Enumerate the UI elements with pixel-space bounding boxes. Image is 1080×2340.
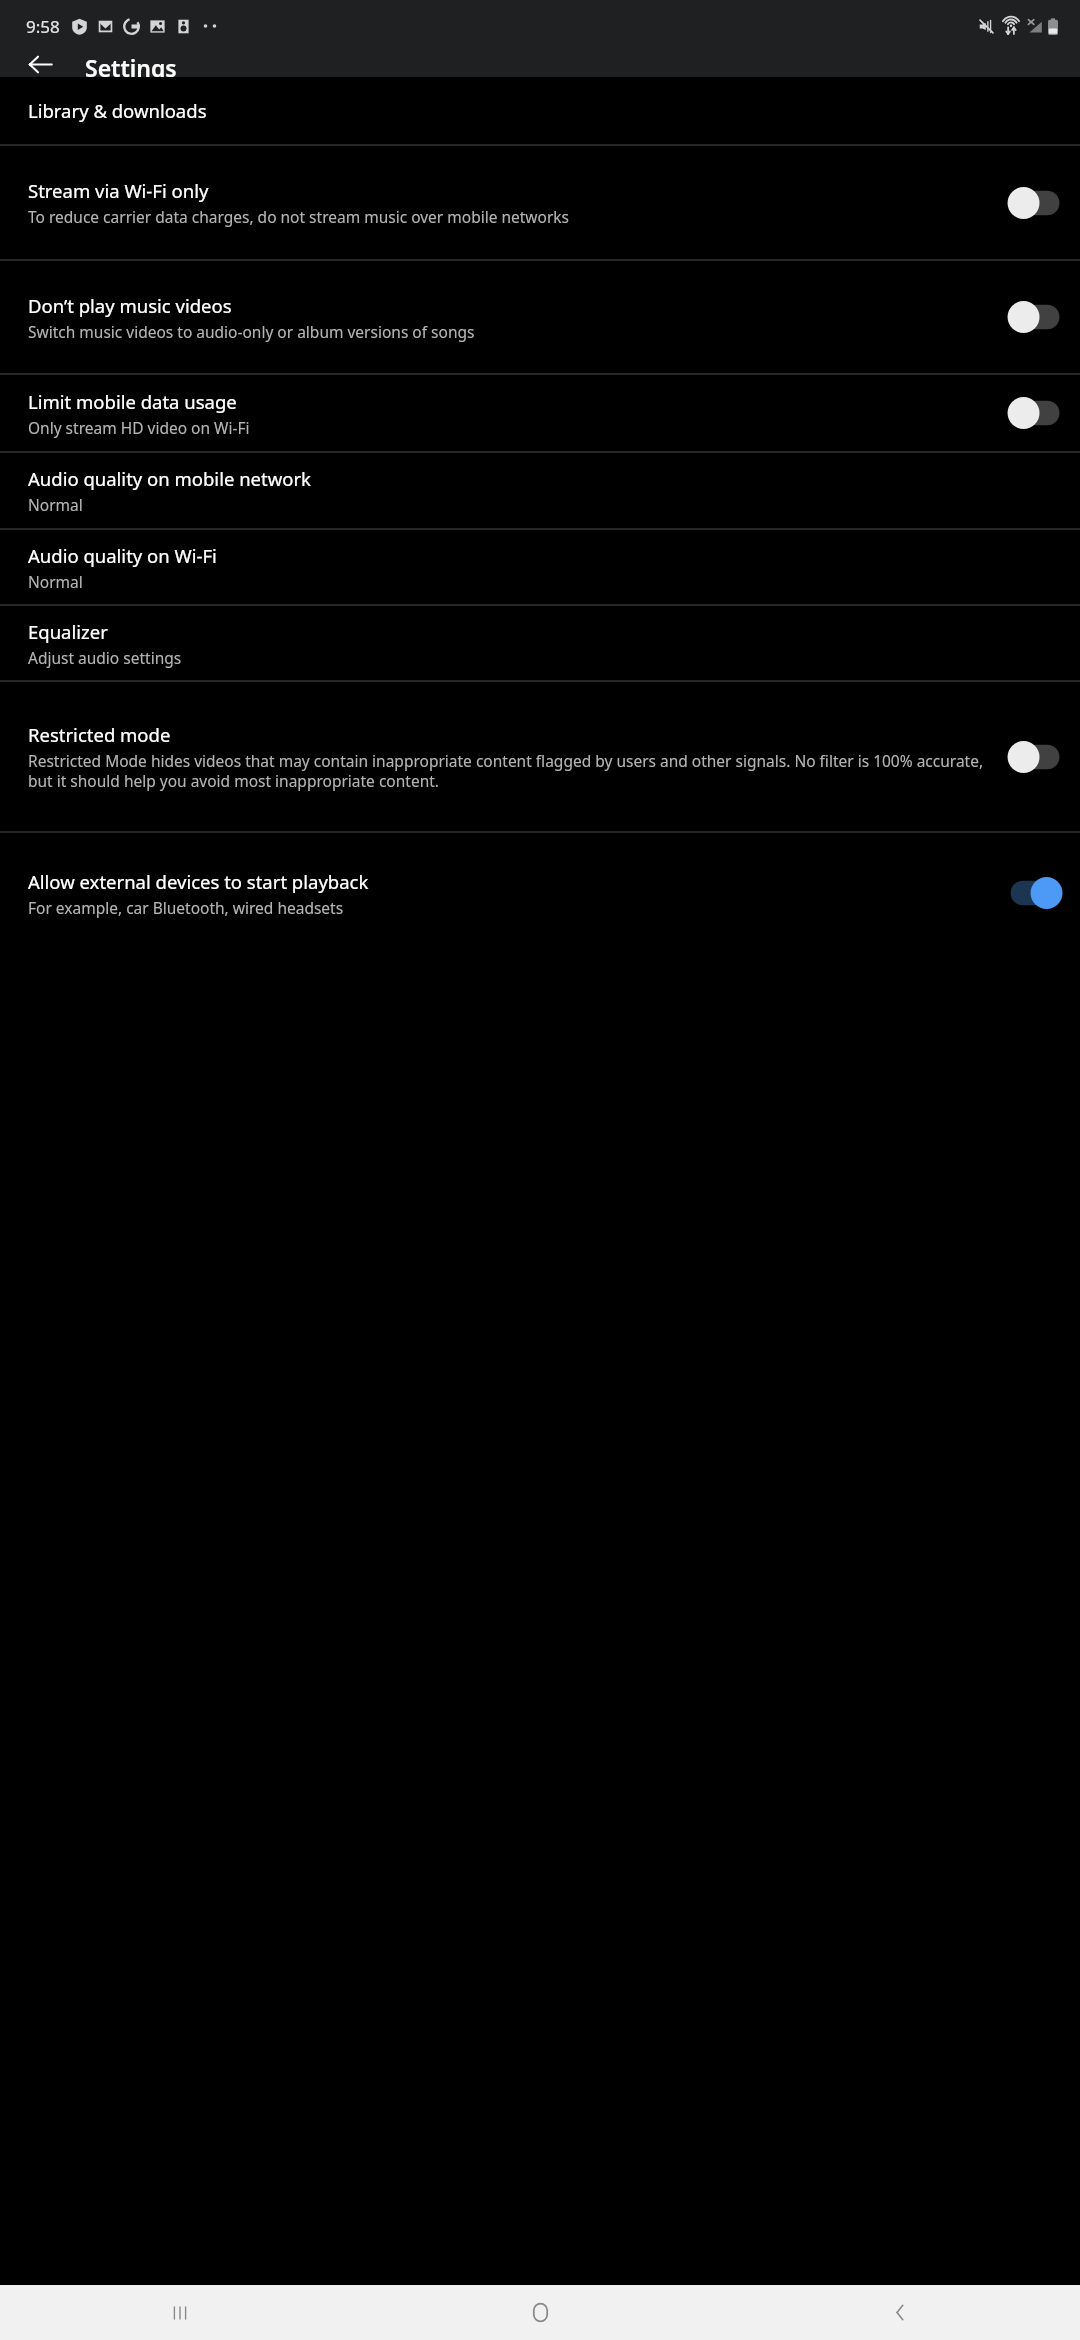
button[interactable]: Audio quality on mobile network [0,453,1080,528]
button[interactable]: Equalizer [0,606,1080,680]
staticText: 9:58 [26,15,60,38]
staticText: Allow external devices to start playback [28,869,369,894]
button[interactable]: Recents [0,2285,360,2340]
button[interactable]: Limit mobile data usage [0,375,1080,451]
staticText: Adjust audio settings [28,647,182,668]
button[interactable]: Stream via Wi-Fi only [0,146,1080,259]
button[interactable]: Audio quality on Wi-Fi [0,530,1080,604]
button[interactable]: Allow external devices to start playback [0,833,1080,953]
staticText: Equalizer [28,619,108,644]
button[interactable]: Don’t play music videos [0,261,1080,373]
button[interactable]: Home [360,2285,720,2340]
staticText: Only stream HD video on Wi-Fi [28,417,250,438]
staticText: Limit mobile data usage [28,389,237,414]
staticText: For example, car Bluetooth, wired headse… [28,897,344,918]
staticText: Library & downloads [28,98,207,123]
button[interactable]: Toggle off [1008,186,1060,220]
staticText: Restricted Mode hides videos that may co… [28,750,988,792]
staticText: Stream via Wi-Fi only [28,178,209,203]
button[interactable]: Back [14,52,66,77]
staticText: Audio quality on Wi-Fi [28,543,217,568]
button[interactable]: Back [720,2285,1080,2340]
staticText: Audio quality on mobile network [28,466,311,491]
button[interactable]: Toggle on [1008,876,1060,910]
staticText: Don’t play music videos [28,293,232,318]
staticText: Settings [85,52,177,77]
button[interactable]: Toggle off [1008,300,1060,334]
staticText: Switch music videos to audio-only or alb… [28,321,475,342]
button[interactable]: Library & downloads [0,77,1080,144]
staticText: Normal [28,571,83,592]
staticText: Normal [28,494,83,515]
staticText: To reduce carrier data charges, do not s… [28,206,570,227]
button[interactable]: Restricted mode [0,682,1080,831]
button[interactable]: Toggle off [1008,740,1060,774]
button[interactable]: Toggle off [1008,396,1060,430]
staticText: Restricted mode [28,722,171,747]
